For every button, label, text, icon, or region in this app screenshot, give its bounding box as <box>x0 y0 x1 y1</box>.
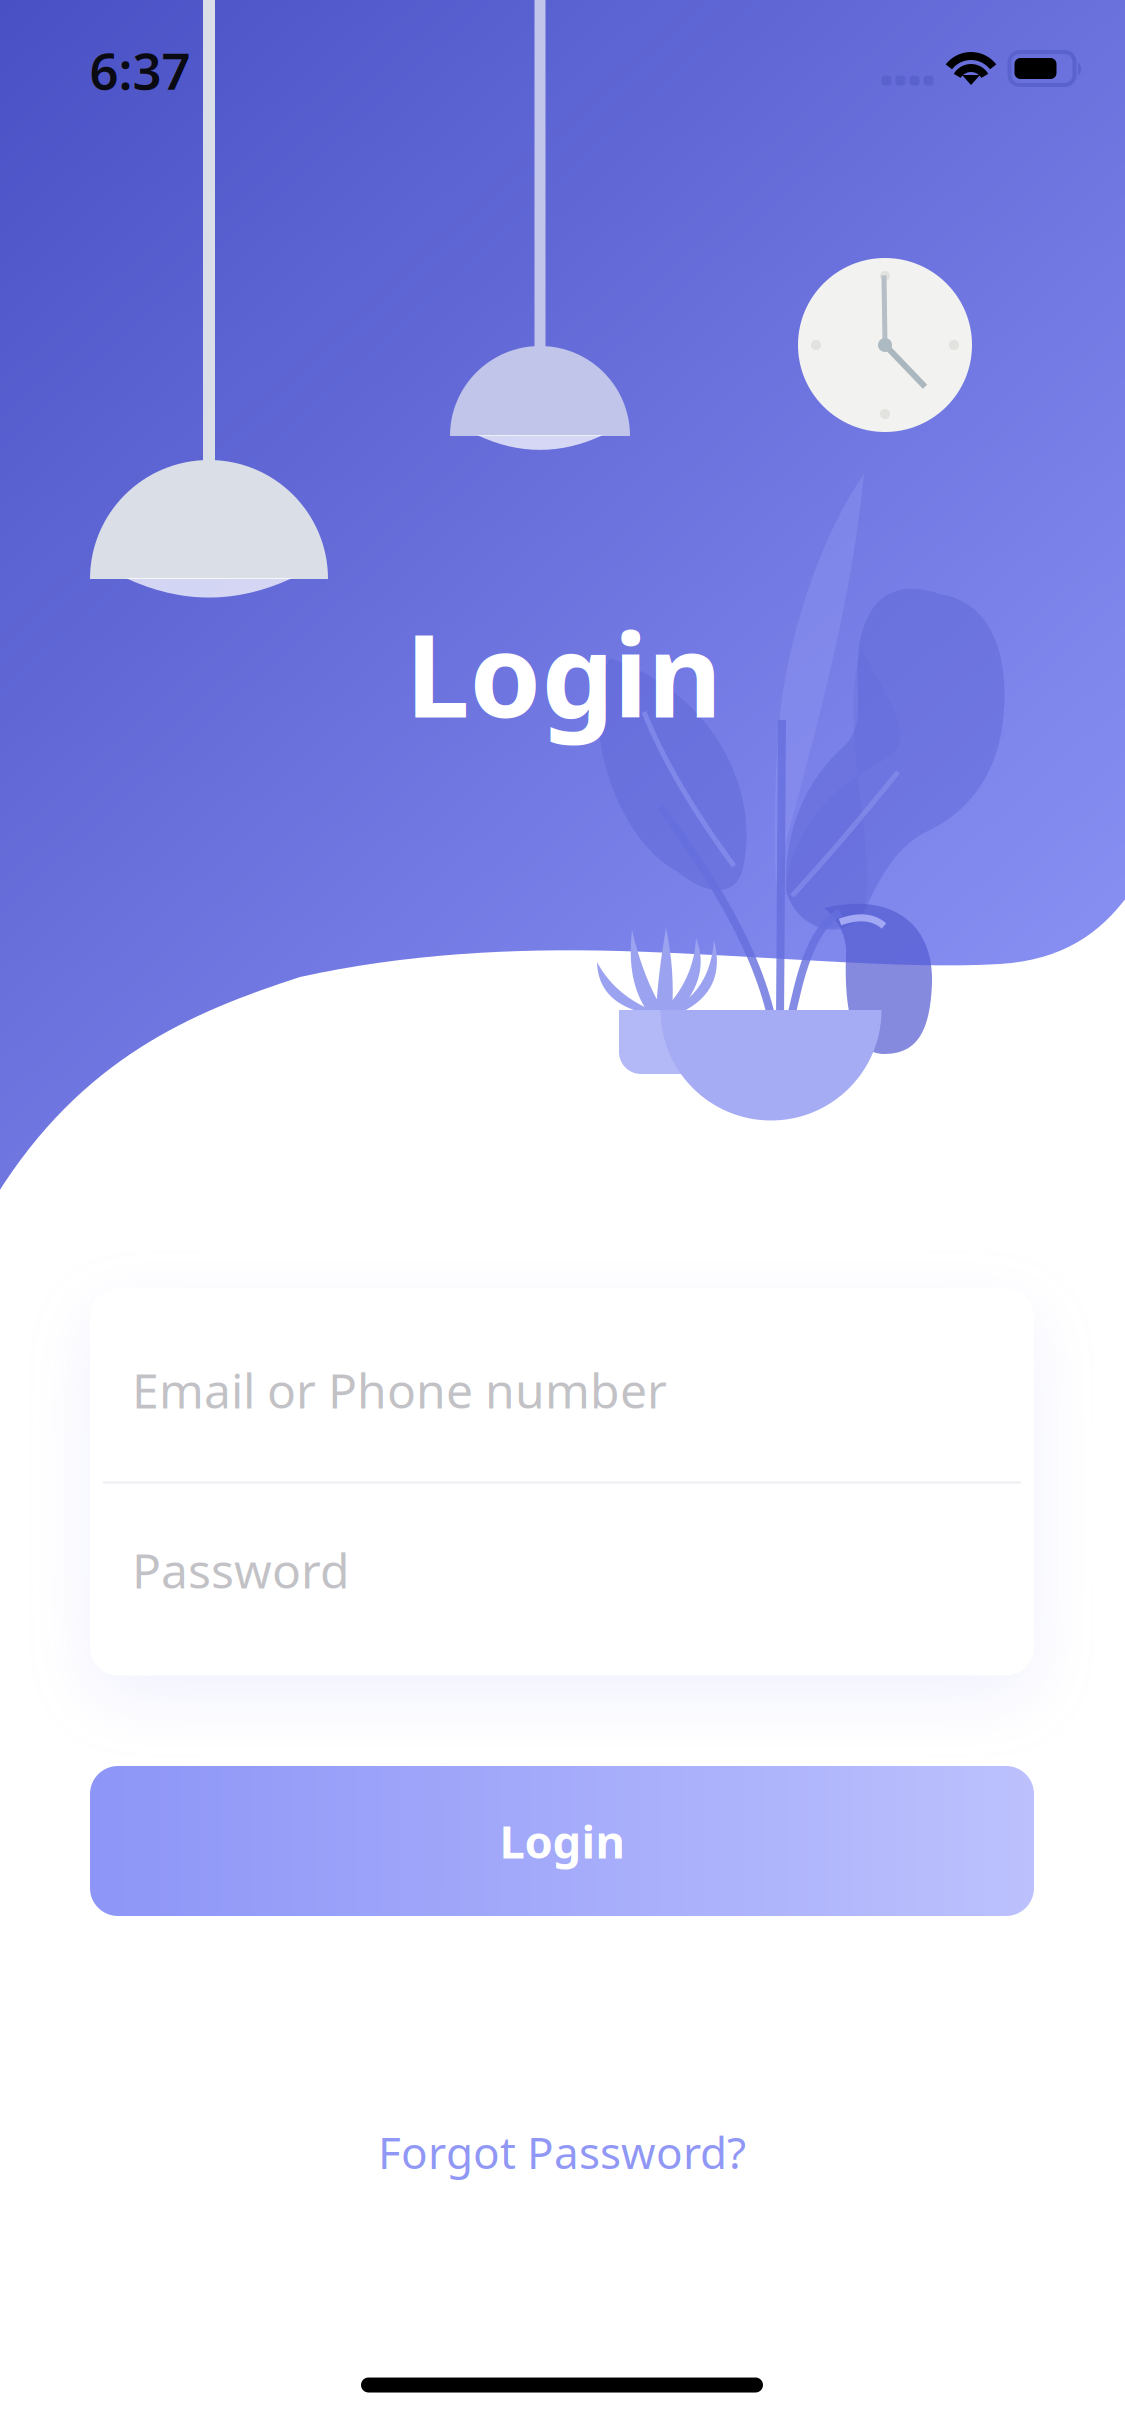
staticText: Forgot Password? <box>378 2123 746 2181</box>
staticText: Login <box>405 597 722 749</box>
button[interactable]: Email or Phone number <box>90 1288 1034 1481</box>
staticText: Password <box>132 1538 350 1602</box>
staticText: 6:37 <box>89 36 190 104</box>
button[interactable]: Login <box>90 1766 1034 1916</box>
button[interactable]: Password <box>90 1483 1034 1675</box>
staticText: Login <box>499 1811 624 1871</box>
button[interactable]: Forgot Password? <box>302 2104 822 2200</box>
staticText: Email or Phone number <box>132 1358 667 1422</box>
